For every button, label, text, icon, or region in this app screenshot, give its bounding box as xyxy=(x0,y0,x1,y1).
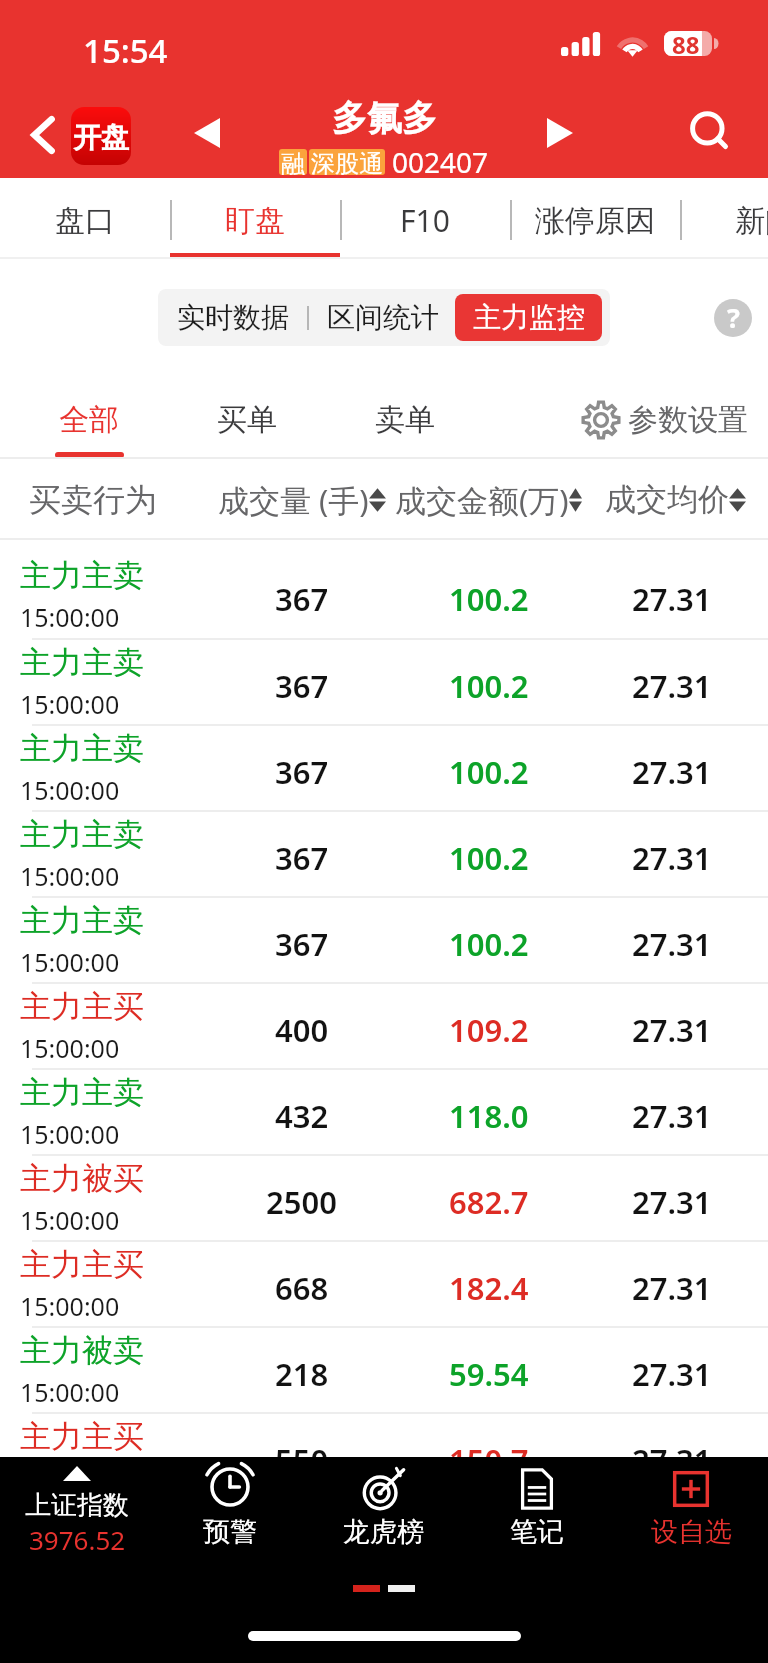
button[interactable]: Search xyxy=(681,103,741,163)
staticText: 主力主卖 xyxy=(20,815,144,854)
staticText: 涨停原因 xyxy=(535,202,655,240)
staticText: 买单 xyxy=(217,401,277,439)
button[interactable]: 盘口 xyxy=(0,178,170,259)
button[interactable]: 预警 xyxy=(153,1457,306,1557)
staticText: 15:00:00 xyxy=(20,687,120,721)
staticText: 367 xyxy=(275,751,329,793)
staticText: 盘口 xyxy=(55,202,115,240)
staticText: 15:00:00 xyxy=(20,1547,120,1581)
staticText: 88 xyxy=(672,28,700,61)
button[interactable]: 全部 xyxy=(10,359,168,459)
button[interactable]: 笔记 xyxy=(460,1457,614,1557)
staticText: 90.21 xyxy=(449,1525,529,1567)
staticText: 主力主卖 xyxy=(20,729,144,768)
button[interactable]: 设自选 xyxy=(614,1457,768,1557)
staticText: 15:00:00 xyxy=(20,1117,120,1151)
staticText: 深股通 xyxy=(311,149,383,175)
staticText: 002407 xyxy=(392,143,489,181)
button[interactable]: 新闻 xyxy=(680,178,768,259)
staticText: 668 xyxy=(275,1267,329,1309)
staticText: 27.31 xyxy=(632,751,712,793)
staticText: 118.0 xyxy=(449,1095,529,1137)
staticText: 182.4 xyxy=(449,1267,529,1309)
staticText: 100.2 xyxy=(449,837,529,879)
button[interactable]: 卖单 xyxy=(326,359,484,459)
staticText: 27.31 xyxy=(632,1439,712,1481)
staticText: 2500 xyxy=(266,1181,337,1223)
staticText: 367 xyxy=(275,923,329,965)
staticText: 27.31 xyxy=(632,1267,712,1309)
staticText: 设自选 xyxy=(651,1515,732,1549)
button[interactable]: 开盘 xyxy=(71,107,131,165)
staticText: 27.31 xyxy=(632,1095,712,1137)
staticText: 主力主卖 xyxy=(20,1073,144,1112)
staticText: 100.2 xyxy=(449,578,529,620)
button[interactable]: 涨停原因 xyxy=(510,178,680,259)
button[interactable]: 成交金额(万) xyxy=(395,479,582,521)
staticText: 27.31 xyxy=(632,1525,712,1567)
staticText: 3976.52 xyxy=(29,1522,126,1557)
staticText: 550 xyxy=(275,1439,329,1481)
staticText: 27.31 xyxy=(632,923,712,965)
staticText: 上证指数 xyxy=(25,1489,129,1522)
button[interactable]: Next stock xyxy=(533,106,587,160)
staticText: 27.31 xyxy=(632,578,712,620)
staticText: 15:00:00 xyxy=(20,945,120,979)
button[interactable]: 参数设置 xyxy=(581,400,748,440)
staticText: 盯盘 xyxy=(225,202,285,240)
staticText: 多氟多 xyxy=(332,96,437,140)
staticText: 区间统计 xyxy=(327,300,439,335)
button[interactable]: 盯盘 xyxy=(170,178,340,259)
staticText: 主力主买 xyxy=(20,1245,144,1284)
staticText: 15:54 xyxy=(83,28,168,73)
button[interactable]: 买单 xyxy=(168,359,326,459)
staticText: 主力监控 xyxy=(473,300,585,335)
staticText: 成交量 (手) xyxy=(218,479,369,521)
button[interactable]: Previous stock xyxy=(180,106,234,160)
staticText: 367 xyxy=(275,837,329,879)
staticText: 开盘 xyxy=(73,120,129,155)
button[interactable]: Back xyxy=(16,108,70,162)
button[interactable]: Help xyxy=(714,299,752,337)
staticText: 27.31 xyxy=(632,1353,712,1395)
staticText: 15:00:00 xyxy=(20,859,120,893)
staticText: 主力主卖 xyxy=(20,556,144,595)
button[interactable]: 成交量 (手) xyxy=(208,479,395,521)
staticText: 融 xyxy=(281,149,305,175)
staticText: 主力被买 xyxy=(20,1159,144,1198)
staticText: 成交金额(万) xyxy=(395,479,569,521)
staticText: 367 xyxy=(275,665,329,707)
staticText: 参数设置 xyxy=(628,401,748,439)
button[interactable]: 成交均价 xyxy=(582,480,768,519)
staticText: 新闻 xyxy=(735,202,768,240)
button[interactable]: F10 xyxy=(340,178,510,259)
staticText: 15:00:00 xyxy=(20,1461,120,1495)
staticText: 27.31 xyxy=(632,837,712,879)
staticText: 预警 xyxy=(203,1515,257,1549)
staticText: 笔记 xyxy=(510,1515,564,1549)
button[interactable]: 上证指数 xyxy=(0,1457,153,1557)
staticText: 15:00:00 xyxy=(20,1031,120,1065)
staticText: 100.2 xyxy=(449,751,529,793)
staticText: 15:00:00 xyxy=(20,1289,120,1323)
staticText: 400 xyxy=(275,1009,329,1051)
staticText: 主力主卖 xyxy=(20,901,144,940)
staticText: 实时数据 xyxy=(177,300,289,335)
staticText: 主力主买 xyxy=(20,1417,144,1456)
button[interactable]: 主力监控 xyxy=(455,294,602,341)
staticText: 15:00:00 xyxy=(20,1375,120,1409)
button[interactable]: 龙虎榜 xyxy=(306,1457,460,1557)
staticText: 218 xyxy=(275,1353,329,1395)
button[interactable]: 实时数据 xyxy=(158,289,307,346)
staticText: 主力主卖 xyxy=(20,1503,144,1542)
staticText: 15:00:00 xyxy=(20,1203,120,1237)
staticText: 27.31 xyxy=(632,665,712,707)
staticText: 主力被卖 xyxy=(20,1331,144,1370)
staticText: 27.31 xyxy=(632,1181,712,1223)
button[interactable]: 区间统计 xyxy=(309,289,455,346)
staticText: 100.2 xyxy=(449,665,529,707)
staticText: 买卖行为 xyxy=(29,480,157,520)
staticText: 150.7 xyxy=(449,1439,529,1481)
staticText: ? xyxy=(727,299,740,336)
